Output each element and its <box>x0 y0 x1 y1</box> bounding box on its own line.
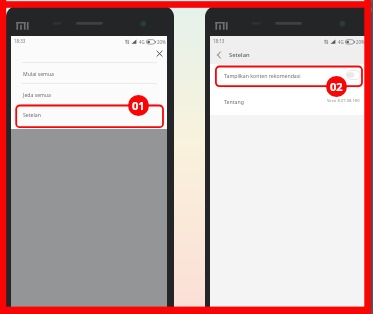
staticText: Tentang <box>224 98 244 105</box>
staticText: 20% <box>157 39 166 45</box>
staticText: Setelan <box>229 51 250 59</box>
button[interactable]: Setelan <box>11 104 167 125</box>
button[interactable]: Mulai semua <box>11 63 167 84</box>
button[interactable]: Back <box>215 51 223 59</box>
staticText: 01 <box>132 98 145 113</box>
staticText: Tampilkan konten rekomendasi <box>224 72 301 79</box>
button[interactable]: Close <box>154 48 166 60</box>
staticText: 02 <box>330 79 343 94</box>
button[interactable]: Tentang <box>210 91 366 111</box>
staticText: 18:33 <box>14 38 26 44</box>
staticText: 20% <box>356 39 365 45</box>
button[interactable]: Toggle recommended content <box>346 70 361 80</box>
staticText: Setelan <box>23 111 41 118</box>
button[interactable]: Jeda semua <box>11 84 167 105</box>
staticText: 4G <box>338 39 344 45</box>
staticText: 18:13 <box>213 38 225 44</box>
button[interactable]: Tampilkan konten rekomendasi <box>210 65 366 86</box>
staticText: Mulai semua <box>23 70 54 77</box>
staticText: Versi 8.07.08.180 <box>327 98 360 104</box>
staticText: Jeda semua <box>23 91 51 98</box>
staticText: 4G <box>139 39 145 45</box>
